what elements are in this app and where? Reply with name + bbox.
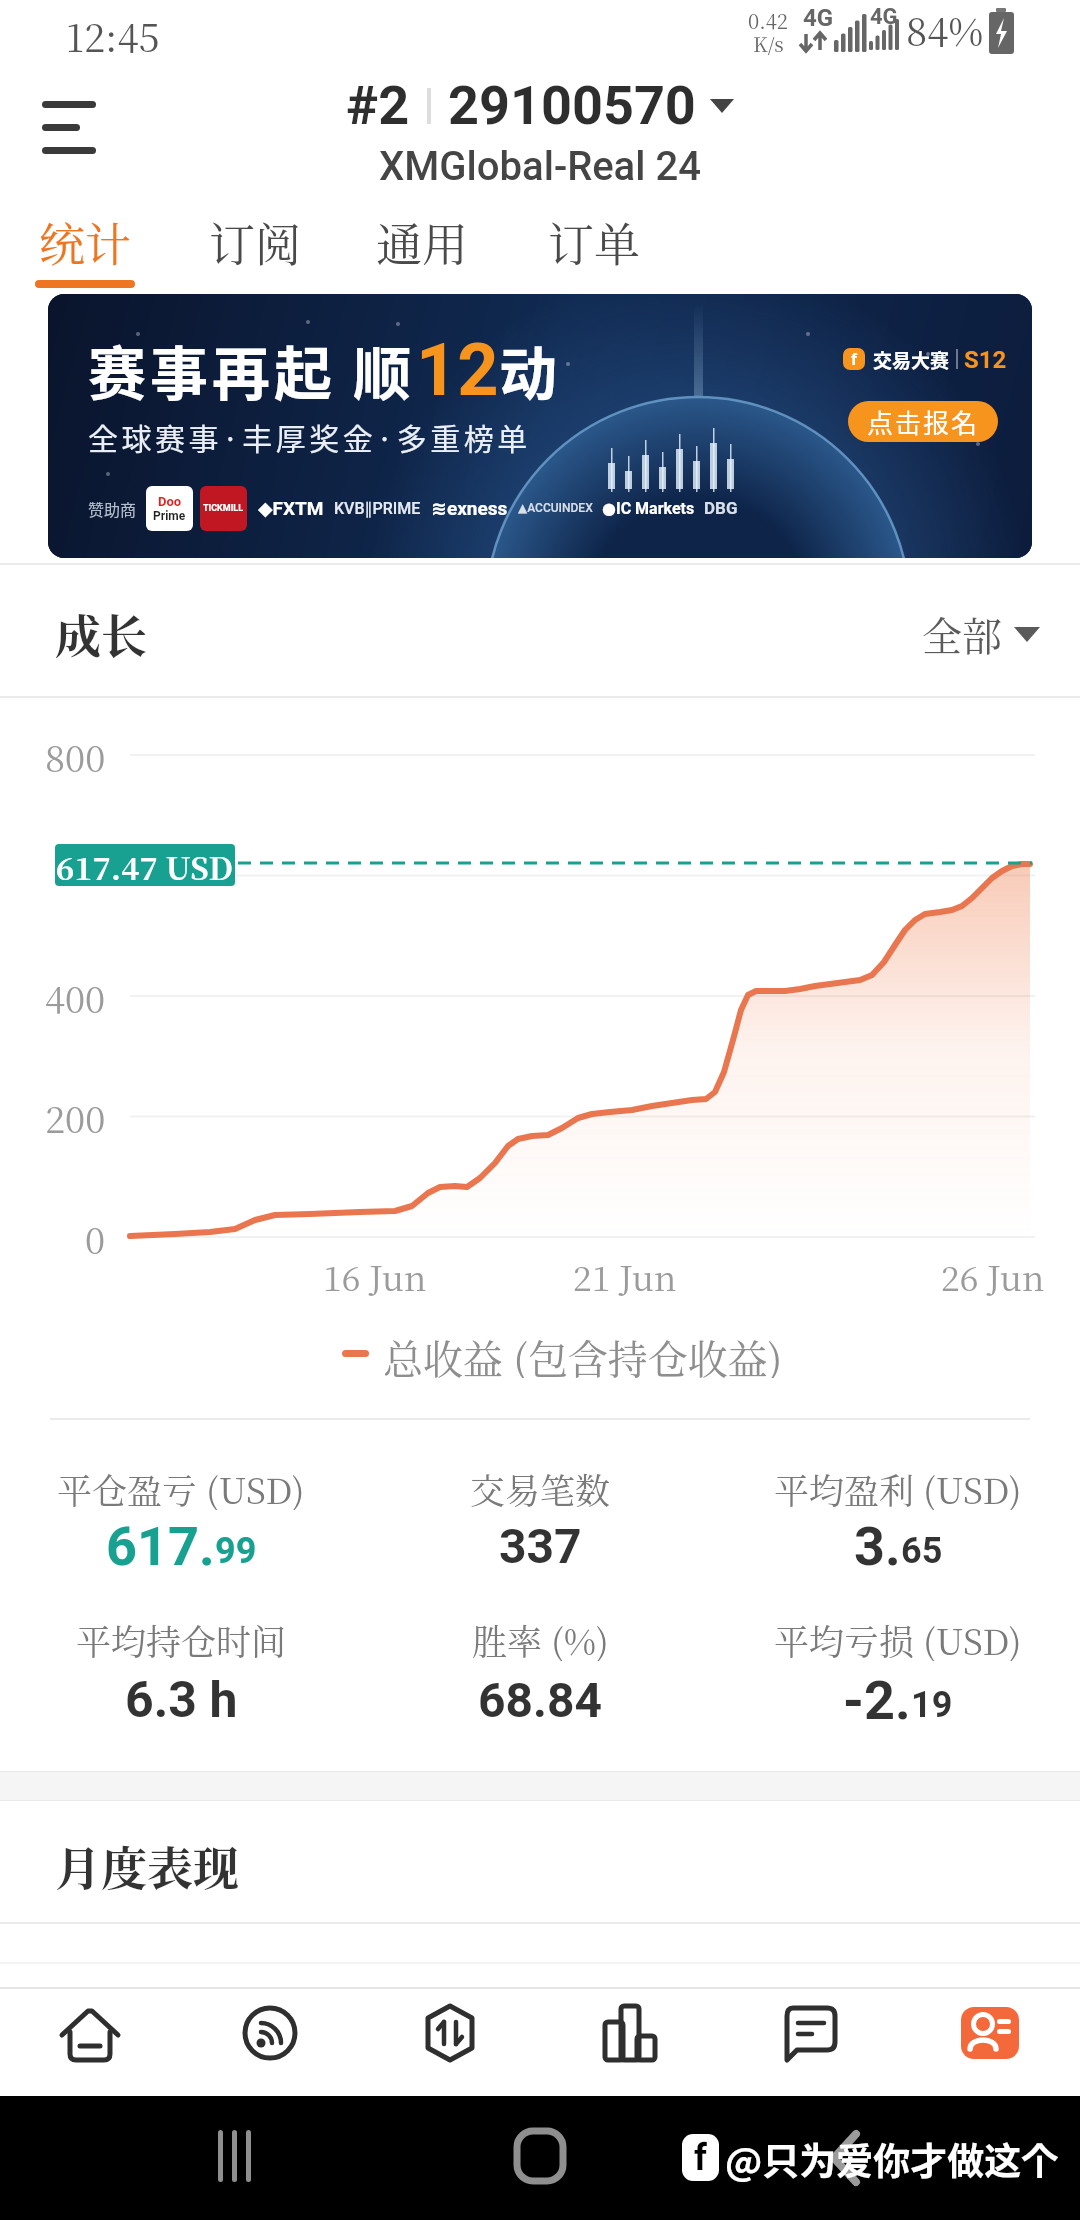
staticText: 400 <box>45 972 106 1020</box>
staticText: ≋exness <box>431 497 508 519</box>
button[interactable]: 全部 <box>900 600 1040 666</box>
staticText: 4G <box>870 4 898 30</box>
staticText: ▲ACCUINDEX <box>518 501 593 515</box>
staticText: 800 <box>45 731 106 779</box>
staticText: 月度表现 <box>55 1832 239 1898</box>
staticText: 6.3 h <box>125 1671 238 1730</box>
staticText: 通用 <box>376 208 468 272</box>
staticText: @只为爱你才做这个 <box>725 2132 1059 2182</box>
button[interactable] <box>180 1989 360 2077</box>
staticText: 0 <box>85 1213 106 1261</box>
staticText: K/s <box>753 29 784 55</box>
staticText: 动 <box>499 328 558 412</box>
staticText: 3. <box>854 1515 901 1578</box>
staticText: TICKMILL <box>203 503 244 514</box>
staticText: 16 Jun <box>323 1252 427 1298</box>
staticText: ●IC Markets <box>602 499 695 518</box>
staticText: 84% <box>906 2 984 56</box>
staticText: 订阅 <box>209 208 301 272</box>
button[interactable]: 订阅 <box>200 208 310 272</box>
staticText: 赛事再起 顺 <box>88 328 416 412</box>
button[interactable] <box>900 1989 1080 2077</box>
staticText: 19 <box>911 1684 953 1726</box>
staticText: 21 Jun <box>573 1252 677 1298</box>
staticText: 赞助商 <box>88 497 137 520</box>
staticText: 全球赛事·丰厚奖金·多重榜单 <box>88 415 531 458</box>
staticText: 68.84 <box>478 1672 603 1728</box>
staticText: -2. <box>843 1669 911 1732</box>
staticText: 订单 <box>548 208 640 272</box>
staticText: KVB∥PRIME <box>334 499 421 518</box>
staticText: 成长 <box>55 600 147 666</box>
staticText: 交易笔数 <box>470 1464 611 1510</box>
staticText: 平仓盈亏 (USD) <box>57 1464 305 1510</box>
staticText: #2 <box>346 74 410 137</box>
staticText: 12:45 <box>66 8 160 56</box>
staticText: f <box>851 349 858 369</box>
button[interactable] <box>720 1989 900 2077</box>
button[interactable] <box>360 1989 540 2077</box>
staticText: 平均盈利 (USD) <box>774 1464 1022 1510</box>
staticText: 26 Jun <box>941 1252 1045 1298</box>
staticText: 点击报名 <box>867 403 980 441</box>
staticText: 200 <box>45 1092 106 1140</box>
staticText: 65 <box>901 1530 943 1572</box>
staticText: 617.47 USD <box>56 844 234 886</box>
button[interactable]: #2 <box>0 70 1080 140</box>
staticText: S12 <box>964 346 1007 372</box>
button[interactable]: 订单 <box>539 208 649 272</box>
staticText: 胜率 (%) <box>472 1615 609 1661</box>
staticText: Doo <box>158 494 182 509</box>
staticText: 4G <box>803 4 834 30</box>
staticText: 总收益 (包含持仓收益) <box>383 1328 783 1378</box>
staticText: 617. <box>106 1515 215 1578</box>
staticText: 平均亏损 (USD) <box>774 1615 1022 1661</box>
staticText: 337 <box>499 1518 582 1574</box>
button[interactable]: 点击报名 <box>848 401 998 442</box>
staticText: XMGlobal-Real 24 <box>379 143 701 190</box>
button[interactable] <box>540 1989 720 2077</box>
button[interactable]: 统计 <box>30 208 140 272</box>
staticText: Prime <box>153 509 186 523</box>
staticText: 统计 <box>39 208 131 272</box>
staticText: 全部 <box>922 605 1002 662</box>
staticText: 29100570 <box>448 74 696 137</box>
staticText: 交易大赛 <box>873 346 950 372</box>
staticText: ◆FXTM <box>258 497 324 519</box>
button[interactable]: 通用 <box>367 208 477 272</box>
staticText: 平均持仓时间 <box>76 1615 287 1661</box>
staticText: 0.42 <box>748 6 788 32</box>
staticText: 12 <box>416 328 499 412</box>
staticText: f <box>694 2137 707 2179</box>
button[interactable] <box>0 1989 180 2077</box>
staticText: 99 <box>215 1530 257 1572</box>
button[interactable] <box>34 90 104 160</box>
staticText: DBG <box>704 498 738 518</box>
